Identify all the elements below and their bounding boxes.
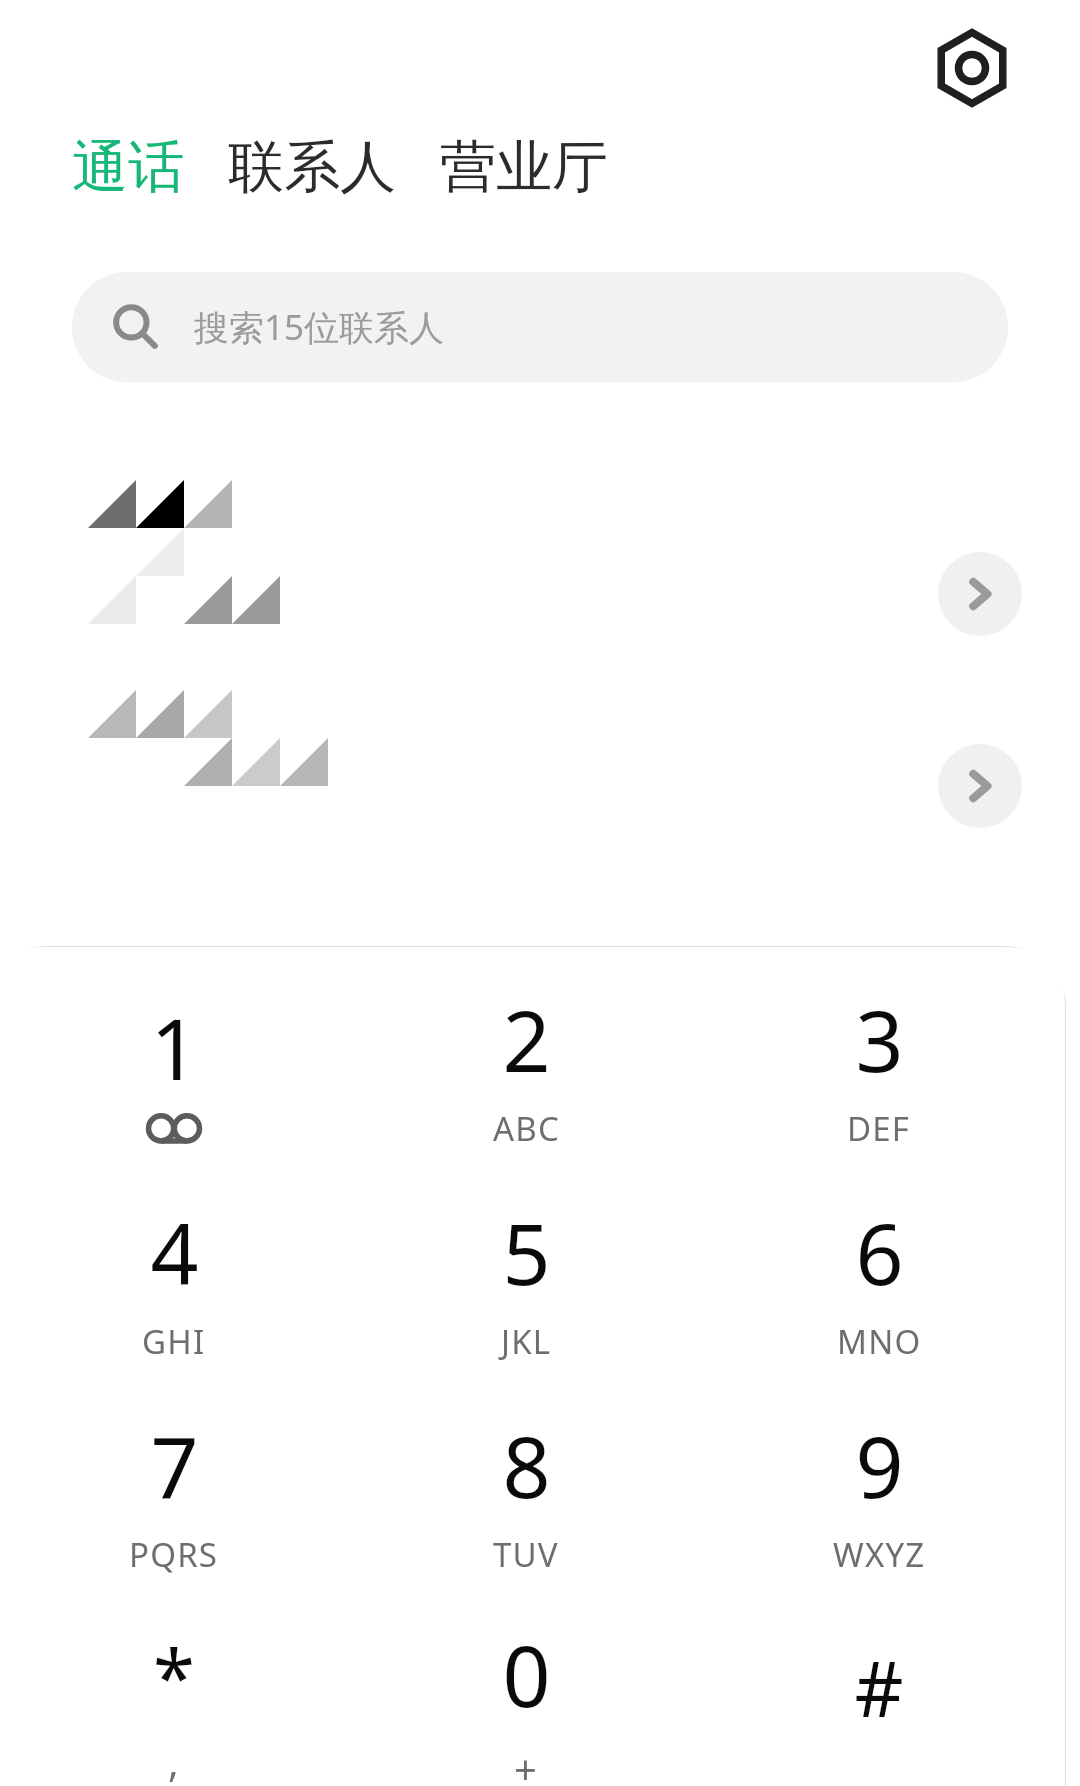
staticText: MNO <box>837 1319 922 1364</box>
button[interactable]: 6 <box>714 1173 1044 1386</box>
staticText: 4 <box>150 1195 199 1309</box>
button[interactable]: * <box>9 1599 339 1786</box>
staticText: ABC <box>493 1106 560 1151</box>
staticText: * <box>153 1624 195 1728</box>
button[interactable]: # <box>714 1599 1044 1786</box>
button[interactable]: 4 <box>9 1173 339 1386</box>
button[interactable]: 营业厅 <box>438 128 610 207</box>
button[interactable]: 1 <box>9 960 339 1173</box>
staticText: GHI <box>142 1319 206 1364</box>
staticText: 通话 <box>72 132 184 203</box>
button[interactable]: 通话 <box>70 128 186 207</box>
button[interactable]: 9 <box>714 1386 1044 1599</box>
staticText: PQRS <box>129 1532 219 1577</box>
button[interactable]: 2 <box>361 960 691 1173</box>
staticText: JKL <box>501 1319 552 1364</box>
staticText: 2 <box>502 982 551 1096</box>
staticText: 搜索15位联系人 <box>194 303 445 351</box>
staticText: 联系人 <box>228 132 396 203</box>
staticText: 营业厅 <box>440 132 608 203</box>
staticText: # <box>854 1636 904 1740</box>
staticText: 7 <box>150 1408 199 1522</box>
staticText: 6 <box>855 1195 904 1309</box>
button[interactable]: 3 <box>714 960 1044 1173</box>
staticText: 3 <box>855 982 904 1096</box>
button[interactable]: 7 <box>9 1386 339 1599</box>
button[interactable]: 0 <box>361 1599 691 1786</box>
button[interactable]: 8 <box>361 1386 691 1599</box>
staticText: DEF <box>847 1106 911 1151</box>
staticText: 0 <box>502 1617 551 1731</box>
staticText: WXYZ <box>833 1532 926 1577</box>
staticText: 9 <box>855 1408 904 1522</box>
button[interactable]: Open <box>938 744 1022 828</box>
staticText: TUV <box>493 1532 559 1577</box>
staticText: 8 <box>502 1408 551 1522</box>
button[interactable]: 联系人 <box>226 128 398 207</box>
button[interactable]: Open <box>938 552 1022 636</box>
button[interactable]: 5 <box>361 1173 691 1386</box>
staticText: 1 <box>150 990 199 1104</box>
staticText: + <box>514 1741 539 1786</box>
button[interactable]: Settings <box>916 12 1028 124</box>
button[interactable]: 搜索15位联系人 <box>72 272 1008 382</box>
staticText: 5 <box>502 1195 551 1309</box>
staticText: , <box>168 1734 180 1786</box>
